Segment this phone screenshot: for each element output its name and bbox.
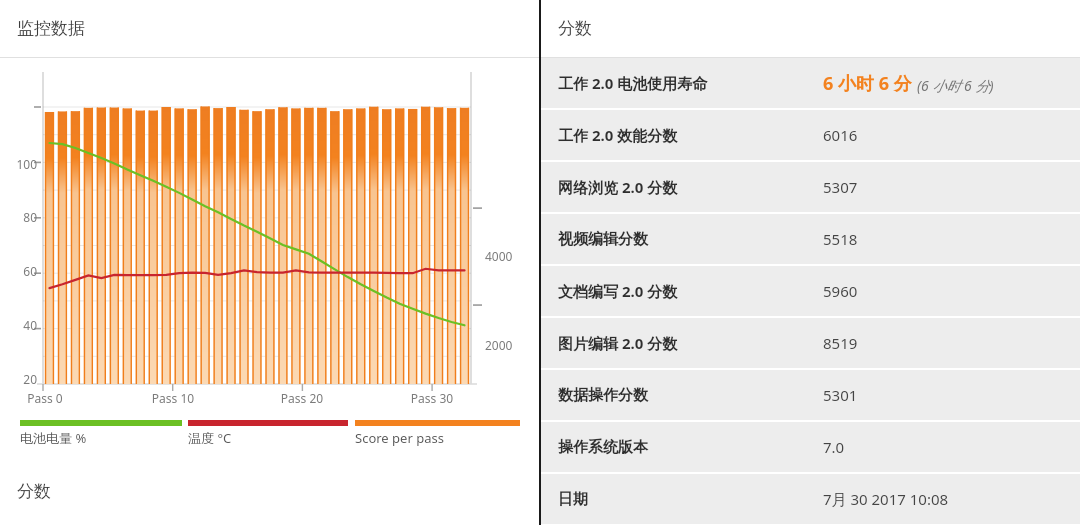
- button[interactable]: Score per pass: [355, 420, 520, 447]
- staticText: 数据操作分数: [558, 386, 823, 405]
- button[interactable]: 图片编辑 2.0 分数: [541, 318, 1080, 368]
- staticText: 电池电量 %: [20, 429, 87, 447]
- staticText: 6 小时 6 分: [823, 71, 912, 96]
- button[interactable]: 数据操作分数: [541, 370, 1080, 420]
- staticText: 6016: [823, 125, 858, 145]
- staticText: 文档编写 2.0 分数: [558, 281, 823, 301]
- staticText: (6 小时 6 分): [917, 76, 994, 95]
- staticText: 网络浏览 2.0 分数: [558, 177, 823, 197]
- staticText: 100: [3, 156, 37, 172]
- staticText: 40: [3, 317, 37, 333]
- staticText: 5518: [823, 229, 858, 249]
- staticText: Pass 20: [272, 390, 332, 406]
- staticText: 分数: [558, 18, 592, 39]
- button[interactable]: 分数: [0, 458, 539, 525]
- button[interactable]: 工作 2.0 电池使用寿命: [541, 58, 1080, 108]
- staticText: 分数: [17, 481, 51, 502]
- staticText: 工作 2.0 电池使用寿命: [558, 73, 823, 93]
- staticText: 操作系统版本: [558, 438, 823, 457]
- staticText: 80: [3, 209, 37, 225]
- staticText: 温度 °C: [188, 429, 232, 447]
- button[interactable]: 监控数据: [0, 0, 539, 57]
- button[interactable]: 日期: [541, 474, 1080, 524]
- staticText: 5307: [823, 177, 858, 197]
- staticText: Pass 0: [17, 390, 73, 406]
- staticText: 8519: [823, 333, 858, 353]
- button[interactable]: 文档编写 2.0 分数: [541, 266, 1080, 316]
- staticText: 7.0: [823, 437, 845, 457]
- staticText: 7月 30 2017 10:08: [823, 489, 949, 509]
- button[interactable]: 分数: [541, 0, 1080, 57]
- button[interactable]: 电池电量 %: [20, 420, 182, 447]
- staticText: 5960: [823, 281, 858, 301]
- staticText: 监控数据: [17, 18, 85, 39]
- button[interactable]: 操作系统版本: [541, 422, 1080, 472]
- staticText: 工作 2.0 效能分数: [558, 125, 823, 145]
- button[interactable]: 温度 °C: [188, 420, 348, 447]
- staticText: 20: [3, 371, 37, 387]
- staticText: 日期: [558, 490, 823, 509]
- staticText: 2000: [485, 337, 535, 353]
- staticText: 60: [3, 263, 37, 279]
- staticText: 图片编辑 2.0 分数: [558, 333, 823, 353]
- staticText: Pass 30: [402, 390, 462, 406]
- button[interactable]: 网络浏览 2.0 分数: [541, 162, 1080, 212]
- staticText: Score per pass: [355, 429, 444, 447]
- staticText: 4000: [485, 248, 535, 264]
- button[interactable]: 视频编辑分数: [541, 214, 1080, 264]
- staticText: Pass 10: [143, 390, 203, 406]
- button[interactable]: 工作 2.0 效能分数: [541, 110, 1080, 160]
- staticText: 5301: [823, 385, 858, 405]
- staticText: 视频编辑分数: [558, 230, 823, 249]
